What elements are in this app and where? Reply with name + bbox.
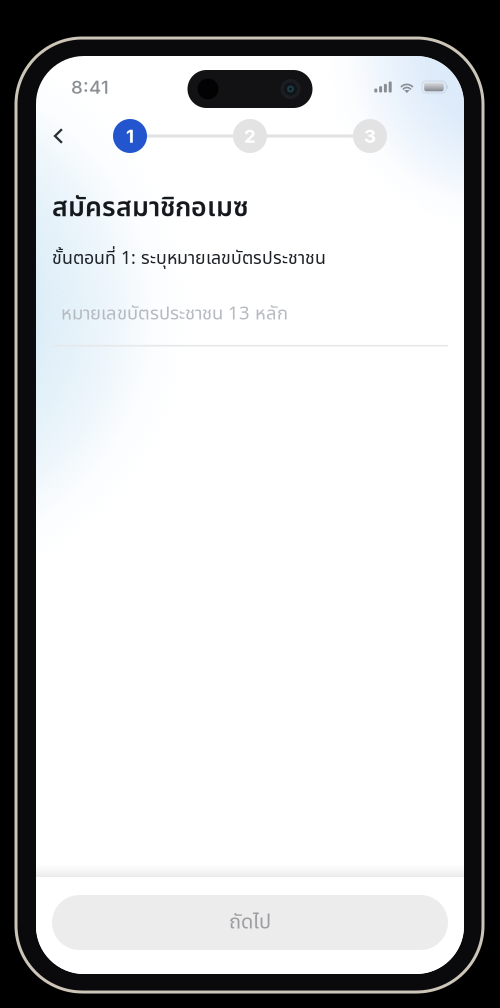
button[interactable]: Step 2 (232, 119, 268, 153)
staticText: 2 (244, 125, 256, 147)
staticText: 8:41 (71, 76, 109, 98)
staticText: ขั้นตอนที่ 1: ระบุหมายเลขบัตรประชาชน (52, 245, 326, 272)
staticText: หมายเลขบัตรประชาชน 13 หลัก (61, 300, 288, 328)
button[interactable]: Back (41, 119, 75, 153)
staticText: ถัดไป (229, 907, 271, 938)
staticText: 3 (364, 125, 376, 147)
button[interactable]: Step 1 (112, 119, 148, 153)
staticText: สมัครสมาชิกอเมซ (52, 188, 249, 228)
button[interactable]: Step 3 (352, 119, 388, 153)
staticText: 1 (126, 125, 134, 147)
button[interactable]: ถัดไป (52, 895, 448, 950)
